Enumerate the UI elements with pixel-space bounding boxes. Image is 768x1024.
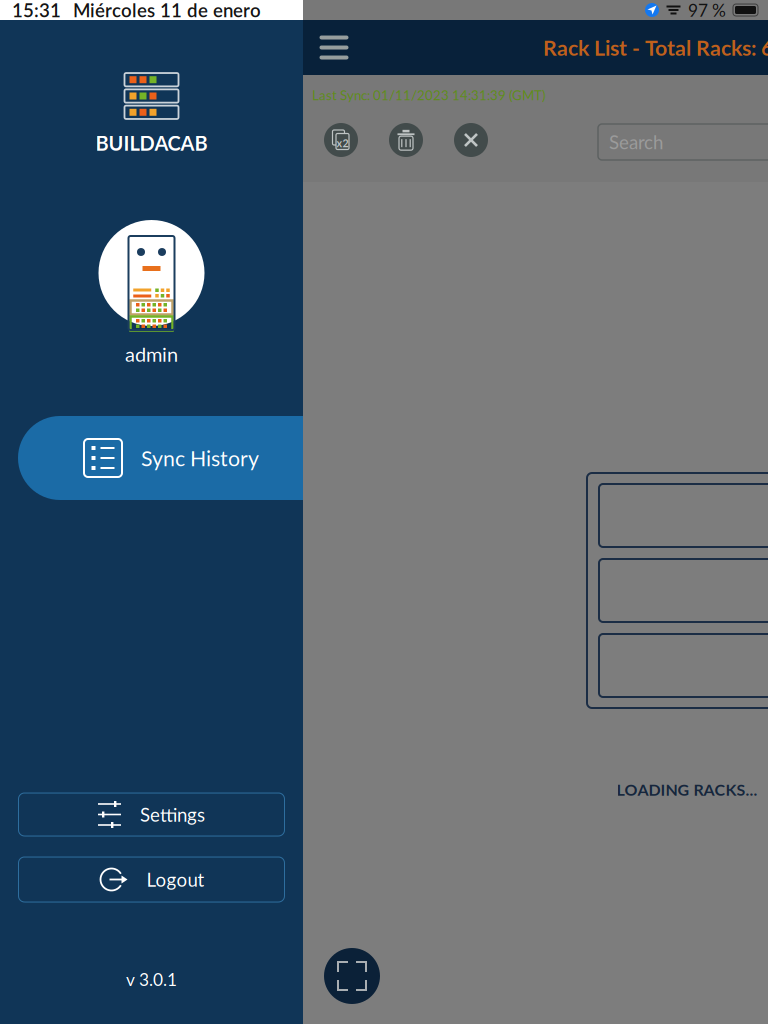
button[interactable]: Settings (18, 793, 284, 836)
button[interactable]: Menu (311, 20, 357, 75)
staticText: Miércoles 11 de enero (73, 0, 261, 21)
staticText: x2 (336, 137, 348, 149)
staticText: 97 % (688, 0, 726, 20)
staticText: admin (125, 342, 178, 366)
staticText: Last Sync: 01/11/2023 14:31:39 (GMT) (312, 87, 546, 103)
staticText: 15:31 (12, 0, 61, 21)
staticText: LOADING RACKS... (616, 780, 757, 799)
staticText: Settings (140, 803, 205, 826)
staticText: Search (609, 131, 663, 153)
staticText: Sync History (141, 445, 259, 471)
button[interactable]: Duplicate (324, 123, 358, 157)
button[interactable]: Sync History (18, 416, 381, 500)
staticText: Rack List - Total Racks: 6 (543, 35, 768, 60)
staticText: BUILDACAB (95, 131, 207, 155)
button[interactable]: Scan (324, 948, 380, 1004)
button[interactable]: Logout (18, 857, 284, 902)
staticText: Logout (146, 868, 204, 891)
button[interactable]: Delete (389, 123, 423, 157)
button[interactable]: Clear (454, 123, 488, 157)
staticText: v 3.0.1 (126, 969, 177, 990)
